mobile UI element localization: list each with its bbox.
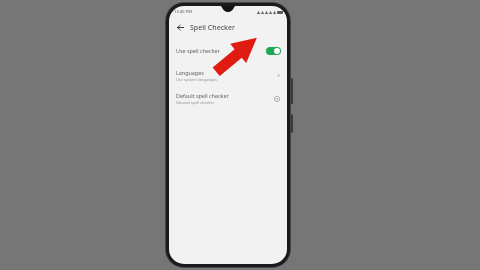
button[interactable]: Spell checker settings (272, 94, 281, 103)
staticText: Use spell checker (176, 47, 266, 54)
button[interactable]: Use spell checker (169, 40, 287, 61)
button[interactable]: Languages (169, 66, 287, 85)
staticText: Languages (176, 69, 204, 76)
staticText: Use system languages (176, 77, 217, 82)
staticText: Spell Checker (190, 23, 235, 33)
button[interactable]: Default spell checker (169, 89, 287, 108)
button[interactable]: Back (174, 21, 187, 34)
staticText: Gboard spell checker (176, 100, 215, 105)
staticText: 12:46 PM (174, 9, 193, 15)
staticText: Default spell checker (176, 92, 229, 99)
